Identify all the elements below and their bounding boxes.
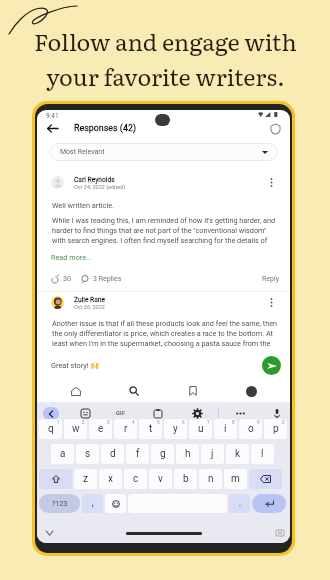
- button[interactable]: Hide keyboard: [41, 526, 57, 540]
- button[interactable]: i: [214, 419, 237, 439]
- button[interactable]: r: [114, 419, 137, 439]
- staticText: ,: [92, 499, 94, 508]
- button[interactable]: Send: [262, 356, 281, 375]
- staticText: y: [173, 423, 178, 435]
- staticText: f: [136, 448, 140, 460]
- staticText: Responses (42): [74, 123, 136, 133]
- button[interactable]: Reply: [262, 275, 279, 283]
- staticText: e: [98, 423, 104, 435]
- button[interactable]: s: [76, 444, 99, 464]
- staticText: 2: [82, 420, 85, 425]
- button[interactable]: o: [239, 419, 262, 439]
- button[interactable]: Claps: [51, 275, 71, 283]
- button[interactable]: GIF: [110, 404, 132, 422]
- staticText: Another issue is that if all these produ…: [52, 319, 278, 347]
- staticText: h: [185, 448, 191, 460]
- button[interactable]: 3 Replies: [81, 275, 122, 283]
- staticText: 5: [157, 420, 160, 425]
- button[interactable]: p: [264, 419, 287, 439]
- staticText: o: [248, 423, 254, 435]
- button[interactable]: n: [199, 469, 222, 489]
- staticText: p: [273, 423, 279, 435]
- button[interactable]: Voice input: [266, 404, 288, 422]
- staticText: c: [133, 473, 139, 485]
- staticText: While I was reading this, I am reminded …: [52, 216, 276, 244]
- staticText: .: [239, 499, 241, 508]
- button[interactable]: Search: [114, 381, 154, 401]
- staticText: a: [60, 448, 66, 460]
- button[interactable]: v: [149, 469, 172, 489]
- staticText: s: [85, 448, 91, 460]
- button[interactable]: w: [64, 419, 87, 439]
- button[interactable]: f: [126, 444, 149, 464]
- staticText: q: [48, 423, 54, 435]
- button[interactable]: u: [189, 419, 212, 439]
- button[interactable]: Stickers: [74, 404, 96, 422]
- button[interactable]: d: [101, 444, 124, 464]
- button[interactable]: Home: [56, 381, 96, 401]
- staticText: v: [158, 473, 163, 485]
- button[interactable]: Emoji: [105, 494, 126, 513]
- button[interactable]: More: [229, 404, 251, 422]
- staticText: Oct 26, 2022: [74, 304, 105, 310]
- staticText: n: [208, 473, 214, 485]
- staticText: j: [211, 448, 214, 460]
- button[interactable]: c: [124, 469, 147, 489]
- button[interactable]: z: [74, 469, 97, 489]
- staticText: 3 Replies: [93, 275, 122, 283]
- button[interactable]: b: [174, 469, 197, 489]
- button[interactable]: x: [99, 469, 122, 489]
- button[interactable]: l: [251, 444, 274, 464]
- staticText: b: [183, 473, 189, 485]
- button[interactable]: More options: [265, 296, 277, 309]
- button[interactable]: j: [201, 444, 224, 464]
- button[interactable]: Read more...: [51, 253, 92, 262]
- staticText: u: [198, 423, 204, 435]
- button[interactable]: Profile: [231, 381, 271, 401]
- button[interactable]: Enter: [252, 494, 286, 513]
- button[interactable]: Shift: [39, 469, 72, 489]
- staticText: 30: [63, 275, 71, 283]
- button[interactable]: .: [229, 494, 250, 513]
- button[interactable]: g: [151, 444, 174, 464]
- staticText: i: [224, 423, 227, 435]
- staticText: your favorite writers.: [46, 58, 285, 93]
- button[interactable]: Most Relevant: [49, 143, 278, 161]
- button[interactable]: y: [164, 419, 187, 439]
- staticText: r: [124, 423, 128, 435]
- button[interactable]: t: [139, 419, 162, 439]
- staticText: 6: [182, 420, 185, 425]
- staticText: Well written article.: [52, 201, 114, 210]
- button[interactable]: Settings: [186, 404, 208, 422]
- staticText: Oct 24, 2022 (edited): [74, 184, 126, 190]
- button[interactable]: h: [176, 444, 199, 464]
- staticText: Follow and engage with: [34, 23, 297, 58]
- staticText: Zulie Rane: [74, 296, 106, 304]
- staticText: g: [160, 448, 166, 460]
- button[interactable]: a: [51, 444, 74, 464]
- staticText: l: [261, 448, 264, 460]
- button[interactable]: Bookmarks: [173, 381, 213, 401]
- button[interactable]: Backspace: [249, 469, 282, 489]
- button[interactable]: m: [224, 469, 247, 489]
- staticText: k: [235, 448, 241, 460]
- button[interactable]: ,: [82, 494, 103, 513]
- button[interactable]: More options: [265, 176, 277, 189]
- staticText: ?123: [52, 500, 68, 508]
- staticText: Carl Reynolds: [74, 176, 115, 184]
- button[interactable]: q: [39, 419, 62, 439]
- staticText: 0: [282, 420, 285, 425]
- staticText: 9:41: [46, 112, 59, 120]
- button[interactable]: k: [226, 444, 249, 464]
- staticText: 4: [132, 420, 135, 425]
- staticText: GIF: [116, 410, 126, 417]
- staticText: Great story! 🙌: [51, 361, 100, 370]
- staticText: 9: [257, 420, 260, 425]
- button[interactable]: Privacy: [268, 121, 283, 136]
- button[interactable]: Back: [43, 407, 59, 420]
- button[interactable]: e: [89, 419, 112, 439]
- button[interactable]: Back: [43, 120, 61, 137]
- button[interactable]: ?123: [39, 494, 80, 513]
- button[interactable]: Clipboard: [147, 404, 169, 422]
